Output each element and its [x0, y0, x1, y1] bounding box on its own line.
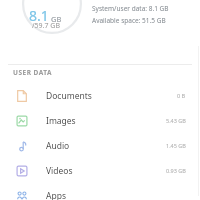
- button[interactable]: Apps: [0, 183, 200, 200]
- staticText: System/user data: 8.1 GB: [92, 4, 169, 13]
- button[interactable]: Videos: [0, 158, 200, 183]
- staticText: Videos: [46, 165, 73, 177]
- button[interactable]: Images: [0, 108, 200, 133]
- staticText: 1.45 GB: [166, 142, 186, 149]
- button[interactable]: Documents: [0, 83, 200, 108]
- staticText: GB: [51, 14, 62, 24]
- staticText: /59.7 GB: [32, 21, 60, 31]
- staticText: 0.93 GB: [166, 167, 186, 174]
- staticText: Images: [46, 115, 76, 127]
- staticText: Audio: [46, 140, 70, 152]
- button[interactable]: Audio: [0, 133, 200, 158]
- staticText: Apps: [46, 190, 66, 200]
- staticText: 8.1: [29, 6, 49, 25]
- other: Audio: [16, 140, 28, 152]
- other: Documents: [16, 90, 28, 102]
- other: Videos: [16, 165, 28, 177]
- staticText: Documents: [46, 90, 92, 102]
- staticText: 5.43 GB: [166, 117, 186, 124]
- other: Apps: [16, 190, 28, 200]
- staticText: Available space: 51.5 GB: [92, 16, 166, 25]
- staticText: 0 B: [177, 92, 186, 99]
- other: Images: [16, 115, 28, 127]
- staticText: USER DATA: [13, 68, 53, 77]
